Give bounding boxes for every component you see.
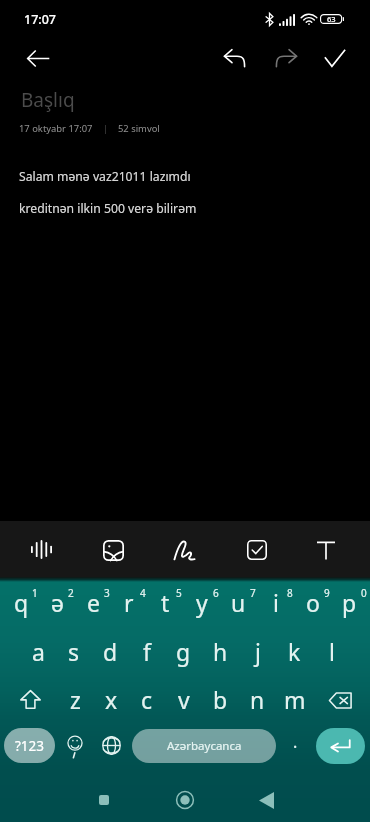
staticText: kreditnən ilkin 500 verə bilirəm [19, 200, 197, 217]
staticText: 17 oktyabr 17:07 [19, 122, 93, 135]
staticText: 8 [287, 586, 293, 600]
button[interactable]: g [165, 628, 202, 674]
button[interactable]: Back [18, 38, 58, 78]
staticText: z [70, 684, 81, 715]
button[interactable]: c [129, 676, 165, 722]
staticText: k [288, 636, 301, 667]
staticText: 52 simvol [118, 122, 160, 135]
staticText: i [273, 587, 279, 618]
staticText: h [213, 636, 228, 667]
button[interactable]: u [220, 579, 257, 625]
button[interactable]: f [128, 628, 165, 674]
button[interactable]: n [239, 676, 276, 722]
staticText: c [141, 684, 153, 715]
staticText: j [255, 636, 261, 667]
staticText: 3 [104, 586, 110, 600]
button[interactable]: k [276, 628, 313, 674]
staticText: r [124, 587, 134, 618]
button[interactable]: x [93, 676, 129, 722]
button[interactable]: m [276, 676, 313, 722]
button[interactable]: l [313, 628, 350, 674]
button[interactable]: Home [165, 780, 205, 820]
button[interactable]: Back [246, 780, 286, 820]
button[interactable]: Record audio [19, 527, 63, 571]
staticText: Azərbaycanca [167, 738, 242, 754]
button[interactable]: v [165, 676, 202, 722]
button[interactable]: Emoji [60, 728, 90, 763]
staticText: 2 [68, 586, 74, 600]
staticText: Salam mənə vaz21011 lazımdı [19, 168, 191, 185]
staticText: 0 [361, 586, 367, 600]
button[interactable]: h [202, 628, 239, 674]
button[interactable]: Shift [3, 676, 57, 722]
button[interactable]: q [3, 579, 39, 625]
button[interactable]: Redo [266, 38, 306, 78]
staticText: 6 [213, 586, 219, 600]
staticText: 17:07 [24, 11, 57, 28]
staticText: ?123 [15, 737, 45, 755]
button[interactable]: y [183, 579, 220, 625]
staticText: ə [51, 587, 64, 618]
staticText: y [196, 587, 208, 618]
staticText: n [250, 684, 265, 715]
button[interactable]: o [294, 579, 331, 625]
button[interactable]: r [111, 579, 147, 625]
button[interactable]: i [257, 579, 294, 625]
button[interactable]: e [75, 579, 111, 625]
staticText: 5 [176, 586, 182, 600]
staticText: 7 [250, 586, 256, 600]
staticText: . [293, 731, 298, 753]
button[interactable]: Save [315, 38, 355, 78]
staticText: l [329, 636, 335, 667]
staticText: m [284, 684, 306, 715]
staticText: p [342, 587, 357, 618]
button[interactable]: Draw [162, 528, 206, 572]
staticText: 1 [32, 586, 38, 600]
staticText: e [87, 587, 100, 618]
staticText: g [176, 636, 191, 667]
button[interactable]: Backspace [313, 676, 368, 722]
button[interactable]: Azərbaycanca [132, 729, 276, 763]
staticText: o [306, 587, 320, 618]
staticText: q [14, 587, 29, 618]
staticText: 63 [327, 14, 336, 24]
staticText: d [103, 636, 118, 667]
button[interactable]: Text format [304, 528, 348, 572]
button[interactable]: Recent apps [84, 780, 124, 820]
staticText: x [105, 684, 118, 715]
button[interactable]: ?123 [4, 728, 55, 763]
button[interactable]: s [56, 628, 92, 674]
staticText: a [32, 636, 45, 667]
staticText: b [213, 684, 228, 715]
button[interactable]: Checklist [235, 528, 279, 572]
staticText: f [143, 636, 151, 667]
button[interactable]: Insert image [91, 528, 135, 572]
button[interactable]: j [239, 628, 276, 674]
button[interactable]: Change language [96, 728, 127, 763]
button[interactable]: Enter [316, 728, 365, 764]
staticText: u [231, 587, 246, 618]
button[interactable]: d [92, 628, 128, 674]
button[interactable]: Undo [214, 38, 254, 78]
staticText: 4 [140, 586, 146, 600]
button[interactable]: ə [39, 579, 75, 625]
button[interactable]: b [202, 676, 239, 722]
staticText: s [68, 636, 80, 667]
button[interactable]: z [57, 676, 93, 722]
button[interactable]: p [331, 579, 368, 625]
staticText: v [178, 684, 190, 715]
staticText: 9 [324, 586, 330, 600]
staticText: Başlıq [21, 87, 75, 113]
button[interactable]: t [147, 579, 183, 625]
button[interactable]: a [20, 628, 56, 674]
staticText: t [161, 587, 170, 618]
staticText: | [93, 122, 118, 135]
button[interactable]: . [280, 728, 310, 763]
